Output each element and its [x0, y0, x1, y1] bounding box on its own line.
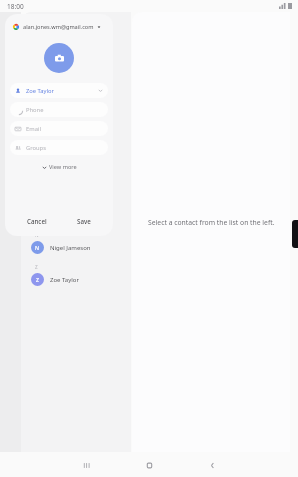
- staticText: Nigel Jameson: [50, 244, 91, 252]
- staticText: Z: [36, 276, 39, 283]
- staticText: 18:00: [7, 2, 24, 11]
- staticText: Select a contact from the list on the le…: [148, 218, 275, 227]
- button[interactable]: N: [21, 239, 131, 256]
- button[interactable]: Recent apps: [75, 454, 97, 476]
- button[interactable]: Zoe Taylor: [10, 83, 108, 98]
- staticText: N: [35, 232, 39, 238]
- staticText: Cancel: [27, 217, 47, 225]
- button[interactable]: Edge panel handle: [292, 220, 298, 248]
- button[interactable]: View more: [5, 160, 113, 174]
- button[interactable]: Back: [201, 454, 223, 476]
- button[interactable]: Add photo: [44, 43, 74, 73]
- staticText: Zoe Taylor: [26, 87, 54, 95]
- button[interactable]: Home: [138, 454, 160, 476]
- staticText: View more: [49, 163, 77, 171]
- button[interactable]: Cancel: [18, 214, 56, 228]
- button[interactable]: Email: [10, 121, 108, 136]
- staticText: Save: [77, 217, 91, 225]
- button[interactable]: Groups: [10, 140, 108, 155]
- button[interactable]: alan.jones.wm@gmail.com: [5, 14, 113, 35]
- button[interactable]: Phone: [10, 102, 108, 117]
- staticText: Z: [35, 264, 38, 270]
- button[interactable]: Save: [68, 214, 100, 228]
- staticText: Phone: [26, 106, 44, 114]
- staticText: Zoe Taylor: [50, 276, 79, 284]
- staticText: Email: [26, 125, 41, 133]
- staticText: Groups: [26, 144, 46, 152]
- staticText: alan.jones.wm@gmail.com: [23, 23, 94, 31]
- button[interactable]: Z: [21, 271, 131, 288]
- staticText: N: [35, 244, 40, 251]
